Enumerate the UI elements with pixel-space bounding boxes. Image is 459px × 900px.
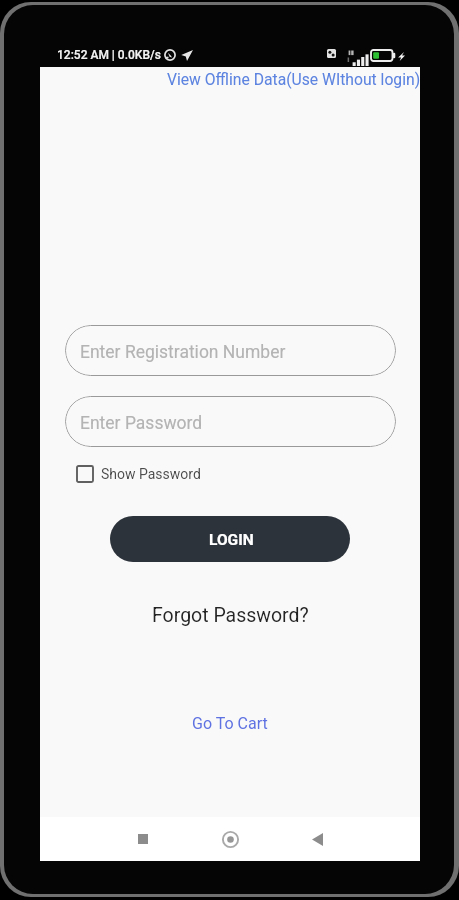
button[interactable]: Go To Cart bbox=[189, 711, 271, 736]
button[interactable]: Show Password bbox=[74, 463, 203, 485]
button[interactable]: Enter Registration Number bbox=[65, 325, 396, 376]
staticText: Show Password bbox=[101, 466, 201, 482]
button[interactable]: Recent apps bbox=[121, 817, 165, 861]
staticText: 12:52 AM | 0.0KB/s bbox=[57, 48, 161, 62]
button[interactable]: Forgot Password? bbox=[149, 601, 312, 630]
staticText: LOGIN bbox=[209, 531, 254, 549]
button[interactable]: LOGIN bbox=[110, 516, 350, 562]
button[interactable]: Home bbox=[208, 817, 252, 861]
button[interactable]: View Offline Data(Use WIthout login) bbox=[167, 68, 421, 90]
staticText: Enter Registration Number bbox=[80, 342, 286, 363]
staticText: Enter Password bbox=[80, 413, 203, 434]
button[interactable]: Enter Password bbox=[65, 396, 396, 447]
button[interactable]: Back bbox=[295, 817, 339, 861]
